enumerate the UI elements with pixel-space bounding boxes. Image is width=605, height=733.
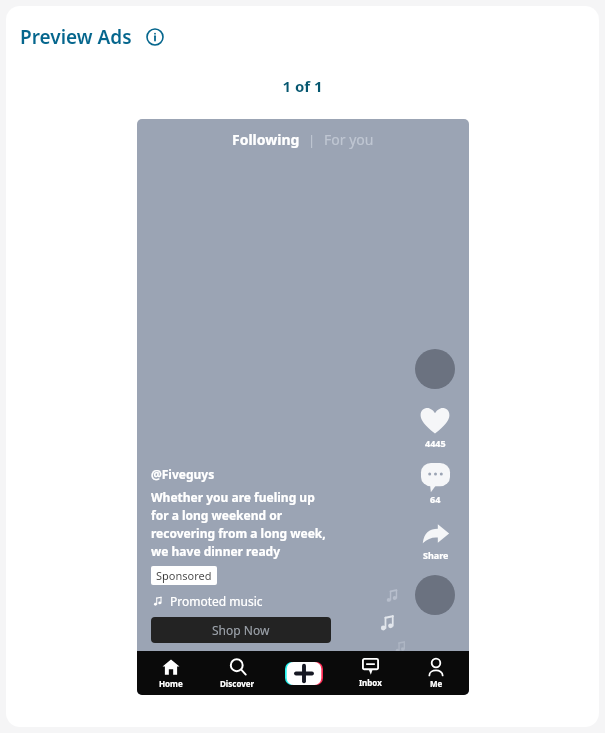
button[interactable]: For you	[324, 130, 374, 149]
button[interactable]: Following	[232, 130, 300, 149]
staticText: Me	[430, 678, 443, 689]
button[interactable]: Like	[420, 406, 450, 449]
staticText: Shop Now	[212, 622, 270, 638]
staticText: 4445	[425, 437, 446, 449]
button[interactable]: Shop Now	[151, 617, 331, 643]
staticText: Whether you are fueling up for a long we…	[151, 489, 326, 560]
button[interactable]: Profile	[415, 349, 455, 389]
button[interactable]: Discover	[204, 651, 271, 695]
staticText: Discover	[220, 678, 255, 689]
button[interactable]: Me	[403, 651, 469, 695]
button[interactable]: Comments	[421, 463, 450, 505]
staticText: Share	[423, 549, 449, 561]
staticText: 1 of 1	[282, 76, 323, 96]
button[interactable]: Music disc	[415, 575, 455, 615]
button[interactable]: Share	[421, 519, 450, 561]
staticText: Promoted music	[170, 593, 263, 609]
button[interactable]: Home	[137, 651, 204, 695]
staticText: For you	[324, 130, 374, 149]
staticText: Following	[232, 130, 300, 149]
staticText: 64	[430, 493, 441, 505]
button[interactable]: Create new video	[285, 662, 323, 685]
button[interactable]: Inbox	[337, 651, 403, 695]
staticText: Preview Ads	[20, 24, 132, 50]
staticText: Sponsored	[156, 568, 212, 583]
staticText: Home	[159, 678, 183, 689]
staticText: |	[308, 131, 316, 149]
button[interactable]: Information about preview ads	[144, 26, 166, 48]
staticText: @Fiveguys	[151, 466, 215, 482]
staticText: Inbox	[359, 677, 382, 688]
